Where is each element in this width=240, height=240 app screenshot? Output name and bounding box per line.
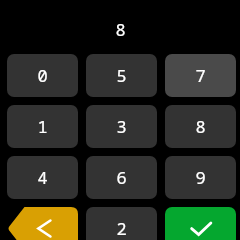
staticText: 8 <box>195 115 206 138</box>
button[interactable]: 8 <box>165 105 236 148</box>
staticText: 4 <box>37 166 48 189</box>
button[interactable]: 6 <box>86 156 157 199</box>
button[interactable]: 9 <box>165 156 236 199</box>
staticText: 0 <box>37 64 48 87</box>
staticText: 5 <box>116 64 127 87</box>
staticText: 1 <box>37 115 48 138</box>
button[interactable]: 4 <box>7 156 78 199</box>
staticText: 7 <box>195 64 206 87</box>
button[interactable]: 3 <box>86 105 157 148</box>
button[interactable]: 5 <box>86 54 157 97</box>
button[interactable]: 7 <box>165 54 236 97</box>
staticText: 6 <box>116 166 127 189</box>
button[interactable]: Confirm <box>165 207 236 240</box>
staticText: 3 <box>116 115 127 138</box>
button[interactable]: Backspace <box>7 207 78 240</box>
button[interactable]: 0 <box>7 54 78 97</box>
staticText: 2 <box>116 217 127 240</box>
staticText: 8 <box>115 18 126 41</box>
button[interactable]: 1 <box>7 105 78 148</box>
button[interactable]: 2 <box>86 207 157 240</box>
staticText: 9 <box>195 166 206 189</box>
